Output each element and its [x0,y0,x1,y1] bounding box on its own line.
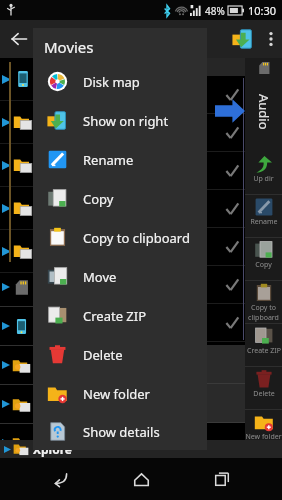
staticText: 48% [205,4,225,18]
button[interactable]: Rename [33,140,207,179]
button[interactable]: Home [121,459,161,499]
button[interactable]: Show on right [33,101,207,140]
staticText: Copy to clipboard [83,229,190,247]
button[interactable]: New folder [33,374,207,413]
staticText: Movies [44,37,94,57]
staticText: Create ZIP [83,307,147,325]
staticText: Rename [83,151,134,169]
staticText: Show on right [83,112,169,130]
button[interactable]: Copy to clipboard [245,281,282,323]
button[interactable]: Create ZIP [245,324,282,366]
staticText: Up dir [253,174,274,184]
staticText: Xplore [33,441,72,457]
staticText: Copy [83,190,114,208]
button[interactable]: Up dir [245,152,282,194]
button[interactable]: Back [41,459,81,499]
button[interactable]: Copy to clipboard [33,218,207,257]
button[interactable]: New folder [245,410,282,452]
button[interactable]: More options [260,20,282,58]
staticText: Create ZIP [247,346,281,356]
staticText: Delete [253,389,275,399]
staticText: Copy to clipboard [248,303,279,323]
staticText: New folder [83,385,150,403]
button[interactable]: Back [0,20,38,58]
staticText: Delete [83,346,123,364]
staticText: Audio [255,94,273,130]
button[interactable]: Move [33,257,207,296]
staticText: New folder [245,432,282,442]
button[interactable]: Transfer [230,26,256,52]
staticText: Disk map [83,73,140,91]
button[interactable]: Delete [33,335,207,374]
button[interactable]: Delete [245,367,282,409]
staticText: Copy [255,260,272,270]
button[interactable]: Recents [202,459,242,499]
staticText: 10:30 [248,3,277,18]
button[interactable]: Create ZIP [33,296,207,335]
staticText: Rename [250,217,278,227]
button[interactable]: Disk map [33,62,207,101]
button[interactable]: Show details [33,413,207,450]
button[interactable]: Copy [245,238,282,280]
staticText: Show details [83,423,160,441]
staticText: Move [83,268,117,286]
button[interactable]: Rename [245,195,282,237]
button[interactable]: Copy [33,179,207,218]
